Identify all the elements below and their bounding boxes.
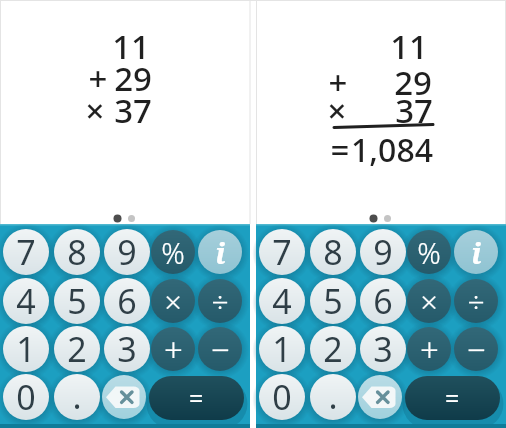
staticText: +	[327, 60, 349, 105]
staticText: 5	[67, 278, 87, 324]
button[interactable]: +	[151, 327, 195, 371]
staticText: 6	[373, 278, 393, 324]
staticText: =	[329, 127, 351, 172]
button[interactable]: −	[454, 327, 498, 371]
button[interactable]: =	[405, 376, 500, 420]
button[interactable]: %	[151, 230, 195, 274]
button[interactable]: i	[454, 230, 498, 274]
button[interactable]: 0	[259, 374, 305, 420]
staticText: i	[215, 233, 226, 272]
staticText: =	[189, 381, 204, 415]
button[interactable]: 4	[259, 278, 305, 324]
staticText: =	[445, 381, 460, 415]
staticText: −	[467, 327, 486, 371]
staticText: 3	[373, 326, 393, 372]
button[interactable]: 6	[104, 278, 150, 324]
button[interactable]: ÷	[198, 279, 242, 323]
staticText: +	[164, 327, 183, 371]
button[interactable]: 8	[54, 229, 100, 275]
staticText: 0	[16, 374, 36, 420]
staticText: 0	[272, 374, 292, 420]
staticText: ×	[164, 281, 182, 322]
button[interactable]: +	[407, 327, 451, 371]
staticText: 4	[16, 278, 36, 324]
staticText: %	[161, 233, 185, 272]
button[interactable]: 0	[3, 374, 49, 420]
button[interactable]: 5	[54, 278, 100, 324]
staticText: 5	[323, 278, 343, 324]
button[interactable]: ×	[407, 279, 451, 323]
button[interactable]: %	[407, 230, 451, 274]
button[interactable]: 7	[259, 229, 305, 275]
button[interactable]: 3	[104, 326, 150, 372]
staticText: .	[328, 374, 338, 419]
staticText: 4	[272, 278, 292, 324]
staticText: 6	[117, 278, 137, 324]
button[interactable]: 5	[310, 278, 356, 324]
button[interactable]: 8	[310, 229, 356, 275]
staticText: 2	[323, 326, 343, 372]
staticText: −	[211, 327, 230, 371]
button[interactable]: i	[198, 230, 242, 274]
staticText: i	[471, 233, 482, 272]
staticText: 3	[117, 326, 137, 372]
button[interactable]: 2	[310, 326, 356, 372]
button[interactable]: 9	[104, 229, 150, 275]
button[interactable]: 9	[360, 229, 406, 275]
button[interactable]: 4	[3, 278, 49, 324]
staticText: 9	[117, 229, 137, 275]
button[interactable]: 6	[360, 278, 406, 324]
staticText: ×	[84, 88, 106, 133]
staticText: 8	[323, 229, 343, 275]
staticText: 37	[0, 88, 152, 133]
staticText: 11	[256, 24, 428, 69]
staticText: +	[87, 56, 109, 101]
button[interactable]: 2	[54, 326, 100, 372]
staticText: .	[72, 374, 82, 419]
staticText: 8	[67, 229, 87, 275]
staticText: 9	[373, 229, 393, 275]
staticText: 29	[0, 56, 152, 101]
button[interactable]: .	[310, 374, 356, 420]
staticText: +	[420, 327, 439, 371]
staticText: 1	[272, 326, 292, 372]
button[interactable]: =	[149, 376, 244, 420]
staticText: 37	[256, 88, 433, 133]
button[interactable]: ÷	[454, 279, 498, 323]
button[interactable]	[102, 375, 146, 419]
staticText: ÷	[467, 281, 485, 322]
button[interactable]: 1	[3, 326, 49, 372]
button[interactable]: 1	[259, 326, 305, 372]
staticText: ×	[326, 88, 348, 133]
staticText: ÷	[211, 281, 229, 322]
staticText: ×	[420, 281, 438, 322]
staticText: 2	[67, 326, 87, 372]
button[interactable]: .	[54, 374, 100, 420]
button[interactable]: −	[198, 327, 242, 371]
staticText: 1	[16, 326, 36, 372]
button[interactable]: 3	[360, 326, 406, 372]
staticText: 29	[256, 60, 432, 105]
button[interactable]: ×	[151, 279, 195, 323]
button[interactable]: 7	[3, 229, 49, 275]
staticText: 7	[272, 229, 292, 275]
staticText: 11	[0, 24, 150, 69]
button[interactable]	[358, 375, 402, 419]
staticText: 7	[16, 229, 36, 275]
staticText: 1,084	[256, 128, 433, 172]
staticText: %	[417, 233, 441, 272]
